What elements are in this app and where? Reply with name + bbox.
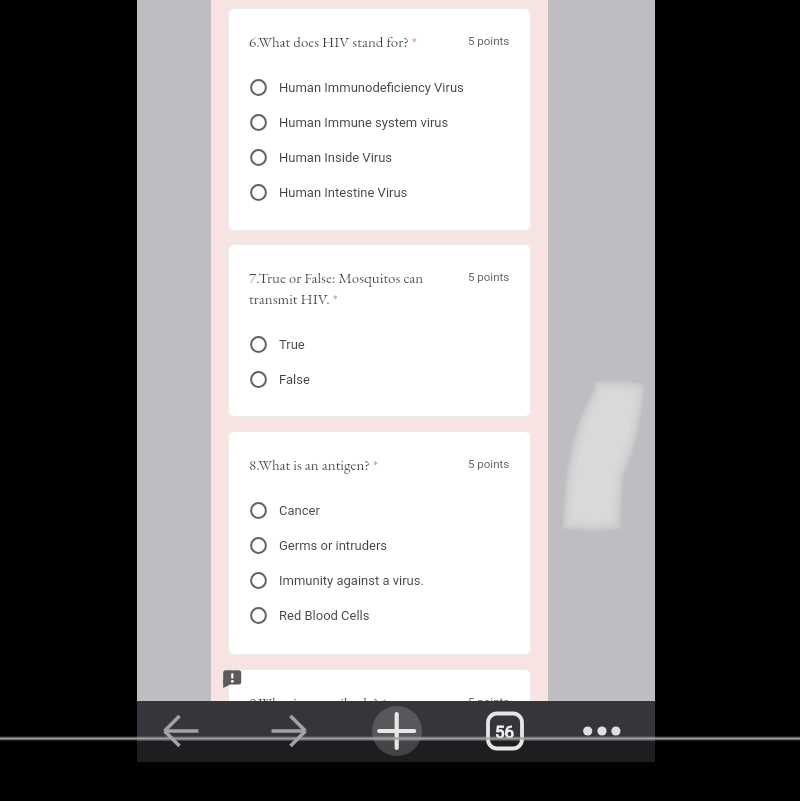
staticText: Human Immunodeficiency Virus <box>279 80 464 95</box>
button[interactable]: 6.What does HIV stand for? * <box>228 8 531 231</box>
button[interactable]: Red Blood Cells <box>228 598 531 633</box>
button[interactable]: Human Inside Virus <box>228 140 531 175</box>
staticText: Human Immune system virus <box>279 115 449 130</box>
staticText: True <box>279 337 305 352</box>
button[interactable]: Germs or intruders <box>228 528 531 563</box>
button[interactable]: False <box>228 362 531 397</box>
button[interactable]: More options <box>576 705 628 757</box>
button[interactable]: 7.True or False: Mosquitos can transmit … <box>228 244 531 417</box>
button[interactable]: Human Immunodeficiency Virus <box>228 70 531 105</box>
staticText: 7.True or False: Mosquitos can transmit … <box>249 268 468 309</box>
staticText: 56 <box>495 722 515 742</box>
button[interactable]: Cancer <box>228 493 531 528</box>
button[interactable]: Human Intestine Virus <box>228 175 531 210</box>
button[interactable]: 8.What is an antigen? * <box>228 431 531 655</box>
staticText: Immunity against a virus. <box>279 573 424 588</box>
button[interactable]: New tab <box>372 706 422 756</box>
button[interactable]: Immunity against a virus. <box>228 563 531 598</box>
staticText: 8.What is an antigen? * <box>249 455 468 475</box>
staticText: 5 points <box>468 270 510 283</box>
staticText: 5 points <box>468 457 510 470</box>
button[interactable]: Back <box>155 705 207 757</box>
staticText: 6.What does HIV stand for? * <box>249 32 468 52</box>
staticText: Human Intestine Virus <box>279 185 408 200</box>
staticText: 5 points <box>468 695 510 708</box>
button[interactable]: 9.What is an antibody? * <box>228 669 531 729</box>
button[interactable]: Forward <box>263 705 315 757</box>
staticText: 5 points <box>468 34 510 47</box>
staticText: Red Blood Cells <box>279 608 370 623</box>
staticText: Germs or intruders <box>279 538 388 553</box>
staticText: Cancer <box>279 503 320 518</box>
button[interactable]: True <box>228 327 531 362</box>
button[interactable]: Human Immune system virus <box>228 105 531 140</box>
button[interactable]: Switch tabs, 56 open <box>479 705 531 757</box>
staticText: 9.What is an antibody? * <box>249 693 468 713</box>
staticText: False <box>279 372 310 387</box>
staticText: Human Inside Virus <box>279 150 393 165</box>
